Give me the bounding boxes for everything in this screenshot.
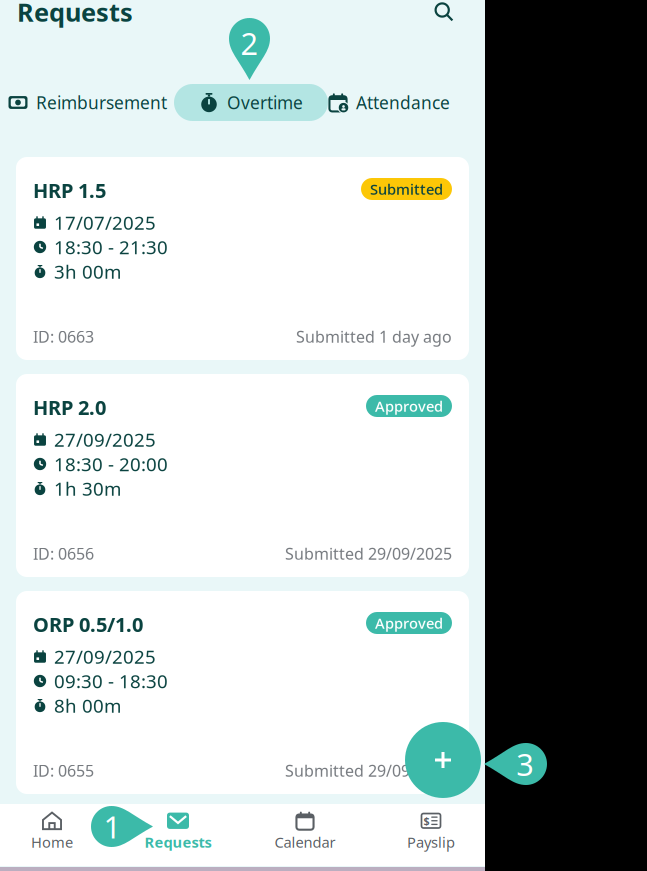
button[interactable]: Reimbursement bbox=[0, 84, 179, 121]
staticText: ORP 0.5/1.0 bbox=[33, 611, 143, 638]
staticText: Overtime bbox=[227, 91, 303, 114]
staticText: $ bbox=[423, 814, 429, 828]
staticText: HRP 2.0 bbox=[33, 394, 106, 421]
staticText: ID: 0655 bbox=[33, 760, 94, 781]
staticText: Submitted 29/09/2025 bbox=[285, 543, 452, 564]
button[interactable]: Attendance bbox=[316, 84, 462, 121]
button[interactable]: HRP 1.5 bbox=[16, 157, 469, 360]
staticText: 18:30 - 21:30 bbox=[54, 235, 168, 259]
staticText: Submitted 1 day ago bbox=[296, 326, 452, 347]
staticText: Approved bbox=[375, 396, 443, 416]
staticText: 2 bbox=[240, 23, 258, 63]
staticText: Payslip bbox=[407, 832, 455, 852]
staticText: 3h 00m bbox=[54, 259, 121, 284]
staticText: Submitted 29/09/2025 bbox=[285, 760, 452, 781]
button[interactable]: Requests bbox=[118, 808, 238, 854]
staticText: Attendance bbox=[356, 91, 450, 114]
staticText: 3 bbox=[516, 744, 534, 784]
staticText: Reimbursement bbox=[36, 91, 167, 114]
staticText: Calendar bbox=[274, 832, 335, 852]
staticText: 27/09/2025 bbox=[54, 644, 156, 669]
button[interactable]: New request bbox=[405, 722, 481, 798]
staticText: 1 bbox=[103, 806, 121, 847]
staticText: Submitted bbox=[370, 179, 443, 199]
staticText: Home bbox=[31, 832, 73, 852]
button[interactable]: Calendar bbox=[245, 808, 365, 854]
staticText: 8h 00m bbox=[54, 693, 121, 718]
staticText: 09:30 - 18:30 bbox=[54, 669, 168, 693]
button[interactable]: HRP 2.0 bbox=[16, 374, 469, 577]
staticText: 18:30 - 20:00 bbox=[54, 452, 168, 476]
staticText: Requests bbox=[144, 832, 211, 852]
staticText: Requests bbox=[17, 0, 133, 29]
staticText: ID: 0663 bbox=[33, 326, 94, 347]
staticText: 1h 30m bbox=[54, 476, 121, 501]
button[interactable]: $ bbox=[371, 808, 491, 854]
staticText: HRP 1.5 bbox=[33, 177, 106, 204]
button[interactable]: Home bbox=[0, 808, 112, 854]
button[interactable]: Search bbox=[428, 0, 460, 28]
staticText: 17/07/2025 bbox=[54, 210, 156, 235]
staticText: ID: 0656 bbox=[33, 543, 94, 564]
button[interactable]: ORP 0.5/1.0 bbox=[16, 591, 469, 794]
staticText: Approved bbox=[375, 613, 443, 633]
button[interactable]: Overtime bbox=[174, 84, 328, 121]
staticText: 27/09/2025 bbox=[54, 427, 156, 452]
